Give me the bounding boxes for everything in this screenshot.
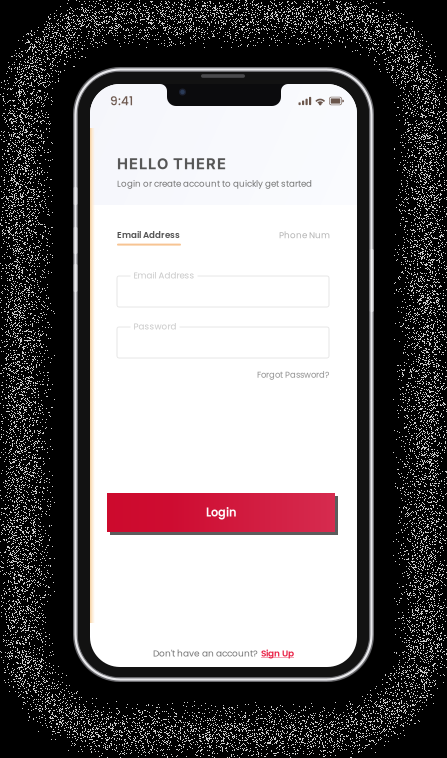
- staticText: Forgot Password?: [257, 369, 329, 381]
- staticText: Don't have an account?: [153, 647, 258, 659]
- staticText: Sign Up: [261, 647, 294, 659]
- staticText: Email Address: [133, 269, 194, 282]
- button[interactable]: Forgot Password?: [257, 369, 329, 381]
- staticText: Password: [133, 320, 176, 333]
- staticText: Login or create account to quickly get s…: [117, 178, 312, 190]
- staticText: 9:41: [110, 93, 133, 109]
- button[interactable]: Login: [107, 493, 335, 532]
- button[interactable]: Password: [117, 327, 329, 358]
- button[interactable]: Phone Num: [279, 231, 330, 243]
- button[interactable]: Email Address: [117, 229, 181, 246]
- staticText: HELLO THERE: [117, 155, 226, 173]
- button[interactable]: Email Address: [117, 276, 329, 307]
- staticText: Login: [206, 505, 236, 520]
- staticText: Phone Num: [279, 229, 330, 241]
- button[interactable]: Sign Up: [261, 647, 294, 659]
- staticText: Email Address: [117, 229, 180, 241]
